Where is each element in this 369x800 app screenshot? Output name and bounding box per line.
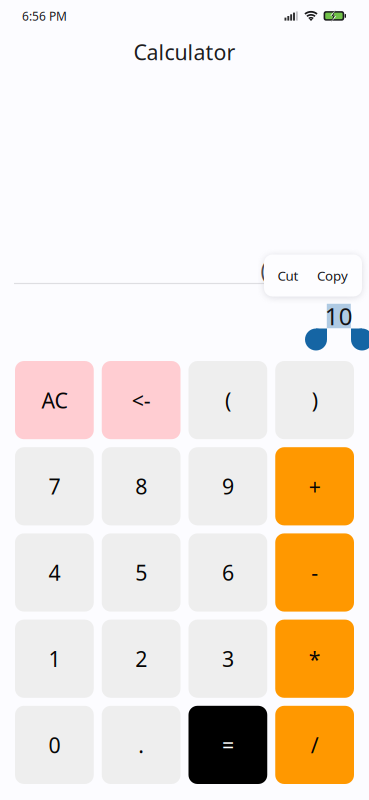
staticText: 10 — [325, 300, 353, 332]
staticText: 6:56 PM — [22, 8, 67, 24]
staticText: 3 — [222, 644, 234, 673]
staticText: 9 — [222, 472, 234, 500]
staticText: ( — [225, 386, 231, 414]
staticText: (100 + 10) — [260, 256, 356, 285]
staticText: <- — [132, 386, 151, 414]
button[interactable]: ) — [275, 361, 354, 439]
staticText: 0 — [48, 731, 60, 759]
button[interactable]: 2 — [102, 620, 181, 698]
staticText: ) — [312, 386, 318, 414]
button[interactable]: - — [275, 533, 354, 612]
staticText: 6 — [222, 558, 234, 587]
button[interactable]: . — [102, 706, 181, 784]
staticText: 5 — [135, 558, 147, 587]
button[interactable]: * — [275, 620, 354, 698]
staticText: 7 — [48, 472, 60, 500]
staticText: Cut — [277, 267, 298, 284]
staticText: Copy — [317, 267, 348, 284]
staticText: + — [309, 472, 321, 500]
button[interactable]: / — [275, 706, 354, 784]
button[interactable]: ( — [188, 361, 267, 439]
staticText: / — [311, 731, 319, 759]
button[interactable]: 5 — [102, 533, 181, 612]
staticText: 4 — [48, 558, 60, 587]
staticText: AC — [41, 386, 67, 414]
staticText: . — [138, 731, 144, 759]
button[interactable]: 3 — [188, 620, 267, 698]
staticText: 1 — [48, 644, 60, 673]
button[interactable]: 1 — [15, 620, 94, 698]
button[interactable]: 0 — [15, 706, 94, 784]
button[interactable]: 7 — [15, 447, 94, 525]
button[interactable]: 4 — [15, 533, 94, 612]
button[interactable]: = — [188, 706, 267, 784]
staticText: Calculator — [133, 38, 235, 66]
staticText: * — [309, 644, 321, 673]
button[interactable]: <- — [102, 361, 181, 439]
button[interactable]: 8 — [102, 447, 181, 525]
staticText: 2 — [135, 644, 147, 673]
button[interactable]: 9 — [188, 447, 267, 525]
button[interactable]: Cut — [266, 254, 310, 296]
staticText: 8 — [135, 472, 147, 500]
button[interactable]: + — [275, 447, 354, 525]
button[interactable]: Copy — [309, 254, 355, 296]
staticText: - — [311, 558, 318, 587]
button[interactable]: 6 — [188, 533, 267, 612]
button[interactable]: AC — [15, 361, 94, 439]
staticText: = — [222, 731, 234, 759]
